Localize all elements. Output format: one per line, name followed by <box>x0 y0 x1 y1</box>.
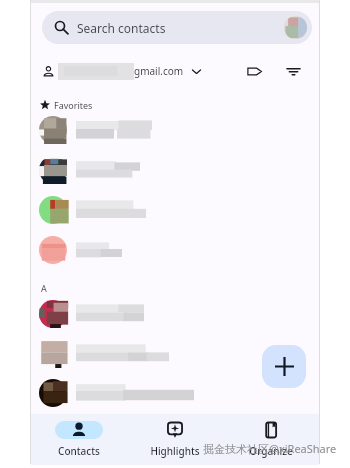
button[interactable]: Contacts <box>31 414 127 465</box>
button[interactable] <box>31 231 319 269</box>
button[interactable] <box>31 335 319 373</box>
staticText: Highlights <box>150 444 200 458</box>
button[interactable]: Highlights <box>127 414 223 465</box>
button[interactable]: Labels <box>241 58 267 84</box>
button[interactable] <box>31 191 319 229</box>
button[interactable]: Organize <box>223 414 319 465</box>
button[interactable]: Create contact <box>262 345 306 388</box>
button[interactable]: Search contacts <box>42 11 312 44</box>
staticText: Contacts <box>58 444 100 458</box>
button[interactable] <box>31 295 319 333</box>
staticText: Search contacts <box>77 20 166 36</box>
button[interactable]: Filter <box>280 58 306 84</box>
staticText: Organize <box>249 444 293 458</box>
button[interactable] <box>31 374 319 412</box>
staticText: Favorites <box>54 99 93 111</box>
staticText: 掘金技术社区@xiReaShare <box>203 441 337 456</box>
staticText: A <box>41 282 47 294</box>
staticText: gmail.com <box>134 64 184 78</box>
button[interactable] <box>31 111 319 149</box>
button[interactable] <box>31 151 319 189</box>
button[interactable]: Account <box>284 16 307 39</box>
